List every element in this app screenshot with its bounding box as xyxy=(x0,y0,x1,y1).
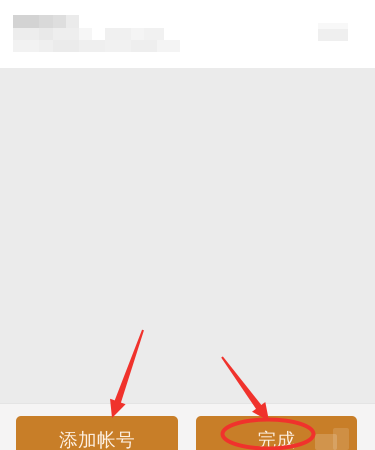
staticText: 添加帐号 xyxy=(59,428,135,450)
button[interactable]: 添加帐号 xyxy=(16,416,178,450)
staticText: 完成 xyxy=(257,428,295,450)
button[interactable]: 完成 xyxy=(196,416,357,450)
